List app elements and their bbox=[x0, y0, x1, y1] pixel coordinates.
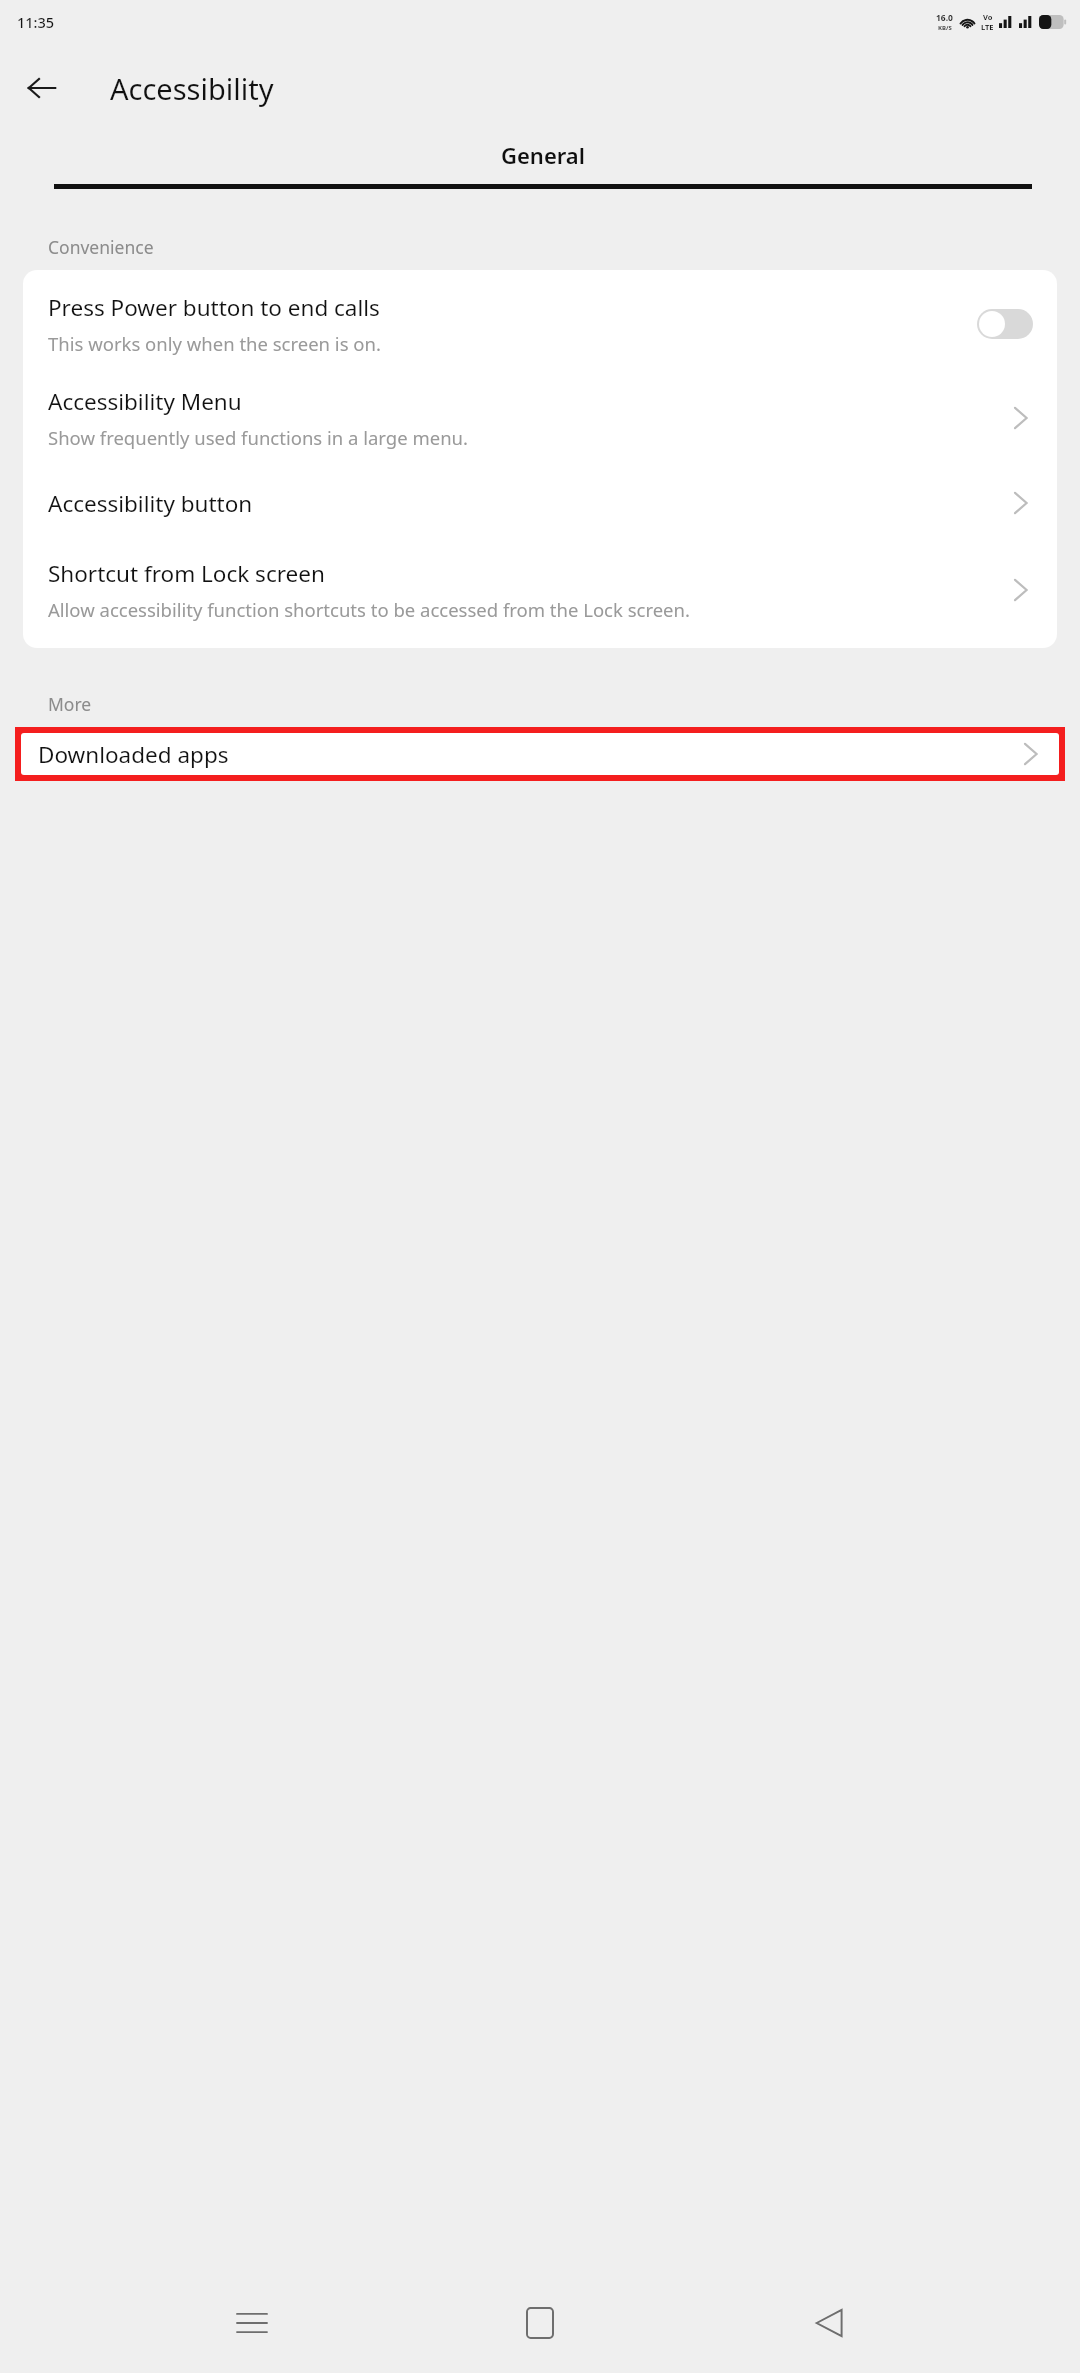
staticText: KB/S bbox=[938, 24, 952, 32]
staticText: Downloaded apps bbox=[38, 739, 1021, 770]
button[interactable]: Downloaded apps bbox=[21, 733, 1059, 775]
staticText: 11:35 bbox=[17, 12, 55, 32]
staticText: 16.0 bbox=[936, 12, 953, 24]
staticText: This works only when the screen is on. bbox=[48, 331, 381, 356]
button[interactable]: Back bbox=[792, 2286, 866, 2360]
staticText: Accessibility button bbox=[48, 488, 253, 519]
staticText: General bbox=[501, 140, 585, 170]
staticText: Convenience bbox=[48, 235, 154, 259]
button[interactable]: Recent apps bbox=[215, 2286, 289, 2360]
button[interactable]: Home bbox=[503, 2286, 577, 2360]
button[interactable]: Press Power button to end calls toggle bbox=[977, 309, 1033, 339]
staticText: Vo bbox=[983, 12, 993, 22]
staticText: Accessibility bbox=[110, 69, 274, 108]
staticText: Shortcut from Lock screen bbox=[48, 558, 325, 589]
staticText: Press Power button to end calls bbox=[48, 292, 380, 323]
button[interactable]: Press Power button to end calls bbox=[23, 270, 1057, 376]
button[interactable]: General bbox=[40, 133, 1046, 189]
button[interactable]: Back bbox=[16, 62, 68, 114]
staticText: More bbox=[48, 692, 92, 716]
staticText: Allow accessibility function shortcuts t… bbox=[48, 597, 690, 622]
staticText: Accessibility Menu bbox=[48, 386, 242, 417]
button[interactable]: Accessibility button bbox=[23, 464, 1057, 542]
button[interactable]: Accessibility Menu bbox=[23, 376, 1057, 464]
staticText: Show frequently used functions in a larg… bbox=[48, 425, 468, 450]
button[interactable]: Shortcut from Lock screen bbox=[23, 542, 1057, 648]
staticText: LTE bbox=[981, 22, 994, 32]
